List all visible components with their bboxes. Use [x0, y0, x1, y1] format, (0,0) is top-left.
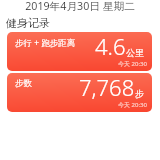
staticText: 2019年4月30日 星期二 — [0, 0, 160, 14]
staticText: 步 — [135, 88, 144, 99]
staticText: 公里 — [126, 47, 144, 58]
staticText: 步行 + 跑步距离 — [15, 37, 76, 49]
staticText: 今天 20:30 — [118, 101, 147, 109]
staticText: 健身记录 — [6, 16, 50, 30]
staticText: 7,768 — [79, 73, 135, 102]
staticText: 步数 — [15, 78, 32, 89]
staticText: 4.6 — [95, 32, 126, 61]
button[interactable]: 步数 — [7, 73, 152, 112]
button[interactable]: 步行 + 跑步距离 — [7, 32, 152, 71]
staticText: 今天 20:30 — [118, 60, 147, 68]
